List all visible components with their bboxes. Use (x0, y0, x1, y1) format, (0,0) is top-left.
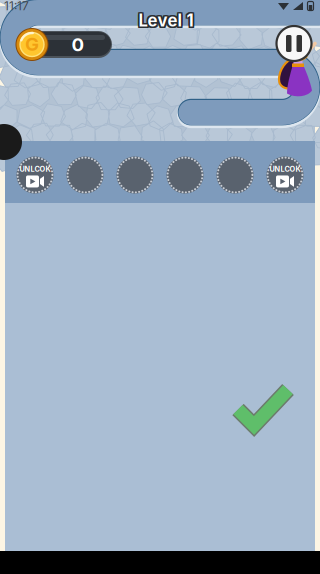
button[interactable]: Empty slot (66, 156, 103, 193)
staticText: UNLCOK (19, 165, 50, 173)
button[interactable]: Pause (273, 23, 314, 64)
button[interactable]: Unlock with video (266, 156, 303, 193)
staticText: 0 (71, 33, 84, 56)
staticText: Level 1 (138, 9, 193, 29)
staticText: Level 1 (140, 12, 195, 32)
staticText: Level 1 (140, 9, 195, 29)
staticText: Level 1 (138, 12, 193, 32)
button[interactable]: Empty slot (216, 156, 253, 193)
staticText: UNLCOK (269, 165, 300, 173)
staticText: Level 1 (140, 10, 195, 31)
staticText: G (25, 33, 39, 55)
button[interactable]: Empty slot (166, 156, 203, 193)
staticText: Level 1 (137, 10, 192, 31)
staticText: Level 1 (137, 12, 192, 32)
staticText: Level 1 (137, 9, 192, 29)
staticText: 11:17 (4, 0, 29, 13)
button[interactable]: Coins: 0 (4, 27, 112, 61)
staticText: Level 1 (138, 10, 193, 31)
button[interactable]: Unlock with video (16, 156, 53, 193)
button[interactable]: Empty slot (116, 156, 153, 193)
